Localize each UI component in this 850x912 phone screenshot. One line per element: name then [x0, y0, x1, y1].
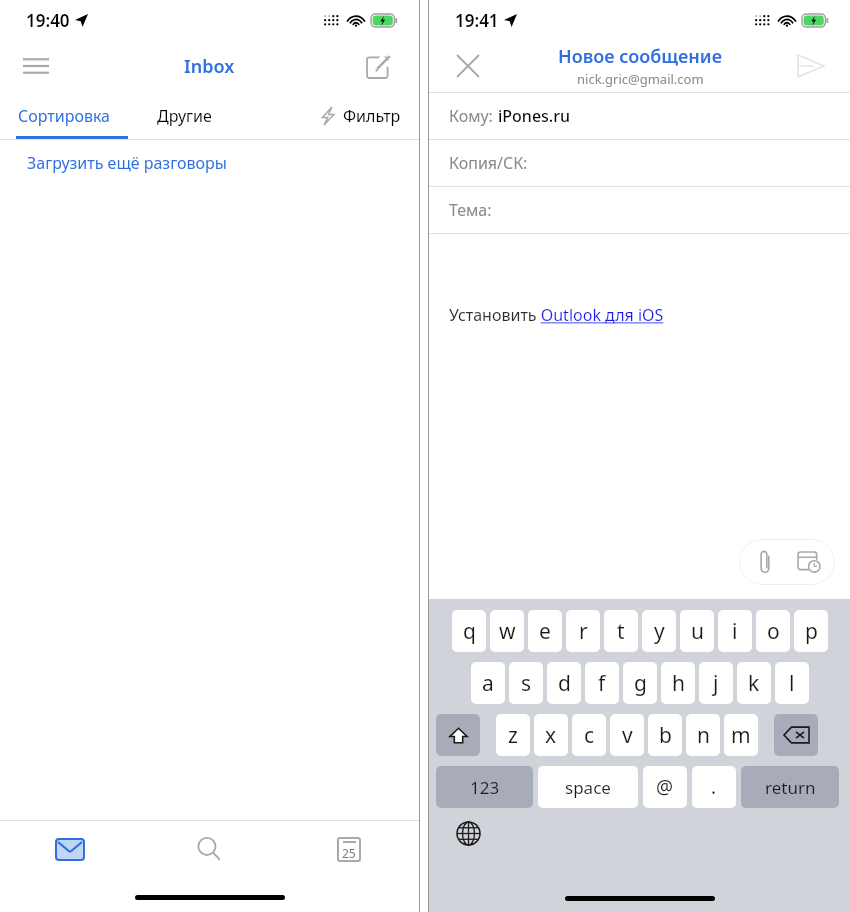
staticText: Фильтр	[343, 105, 401, 127]
staticText: z	[508, 721, 518, 750]
staticText: Сортировка	[18, 105, 111, 127]
button[interactable]: r	[566, 610, 600, 652]
staticText: i	[732, 617, 738, 646]
staticText: Загрузить ещё разговоры	[27, 152, 227, 174]
button[interactable]: m	[724, 714, 758, 756]
button[interactable]: Close	[447, 45, 489, 87]
staticText: Inbox	[184, 54, 235, 79]
staticText: @	[656, 774, 674, 800]
staticText: p	[805, 617, 818, 646]
staticText: j	[713, 669, 719, 698]
button[interactable]: Menu	[14, 44, 58, 88]
staticText: q	[463, 617, 476, 646]
staticText: u	[691, 617, 704, 646]
button[interactable]: c	[572, 714, 606, 756]
button[interactable]: l	[775, 662, 809, 704]
staticText: g	[634, 669, 647, 698]
button[interactable]: y	[642, 610, 676, 652]
button[interactable]: Другие	[128, 92, 240, 139]
staticText: y	[654, 617, 665, 646]
button[interactable]: Search	[139, 821, 279, 877]
button[interactable]: Change keyboard	[451, 816, 485, 850]
staticText: l	[789, 669, 795, 698]
button[interactable]: Mail	[0, 821, 139, 877]
button[interactable]: z	[496, 714, 530, 756]
staticText: Копия/СК:	[449, 152, 528, 174]
button[interactable]: Копия/СК:	[429, 140, 850, 186]
staticText: Установить Outlook для iOS	[449, 304, 664, 326]
button[interactable]: p	[794, 610, 828, 652]
staticText: n	[697, 721, 710, 750]
staticText: e	[539, 617, 551, 646]
button[interactable]: q	[452, 610, 486, 652]
button[interactable]: return	[741, 766, 839, 808]
staticText: o	[767, 617, 780, 646]
button[interactable]: v	[610, 714, 644, 756]
button[interactable]: Attach file	[747, 544, 783, 580]
button[interactable]: i	[718, 610, 752, 652]
staticText: Новое сообщение	[558, 44, 722, 69]
button[interactable]: b	[648, 714, 682, 756]
staticText: Тема:	[449, 199, 492, 221]
button[interactable]: .	[692, 766, 736, 808]
button[interactable]: Send	[790, 45, 832, 87]
staticText: .	[711, 774, 717, 800]
staticText: a	[482, 669, 494, 698]
button[interactable]: f	[585, 662, 619, 704]
button[interactable]: d	[547, 662, 581, 704]
button[interactable]: h	[661, 662, 695, 704]
button[interactable]: 123	[436, 766, 533, 808]
button[interactable]: g	[623, 662, 657, 704]
button[interactable]: w	[490, 610, 524, 652]
staticText: b	[659, 721, 672, 750]
staticText: x	[545, 721, 557, 750]
staticText: 19:41	[455, 9, 499, 32]
button[interactable]: Compose	[357, 44, 401, 88]
staticText: return	[765, 776, 816, 799]
button[interactable]: Shift	[436, 714, 480, 756]
button[interactable]: Inbox	[184, 54, 235, 79]
button[interactable]: j	[699, 662, 733, 704]
staticText: d	[558, 669, 571, 698]
staticText: Другие	[157, 105, 212, 127]
button[interactable]: Фильтр	[321, 92, 401, 139]
button[interactable]: Сортировка	[0, 92, 128, 139]
button[interactable]: n	[686, 714, 720, 756]
button[interactable]: u	[680, 610, 714, 652]
button[interactable]: Calendar	[279, 821, 419, 877]
staticText: 123	[470, 776, 500, 799]
button[interactable]: Calendar availability	[791, 544, 827, 580]
staticText: iPones.ru	[498, 105, 571, 127]
staticText: nick.gric@gmail.com	[577, 70, 704, 88]
staticText: c	[584, 721, 595, 750]
staticText: w	[499, 617, 516, 646]
staticText: m	[731, 721, 751, 750]
staticText: 19:40	[26, 9, 70, 32]
button[interactable]: Тема:	[429, 187, 850, 233]
button[interactable]: k	[737, 662, 771, 704]
staticText: f	[598, 669, 606, 698]
button[interactable]: o	[756, 610, 790, 652]
button[interactable]: Backspace	[774, 714, 818, 756]
button[interactable]: space	[538, 766, 638, 808]
staticText: space	[565, 776, 611, 799]
button[interactable]: @	[643, 766, 687, 808]
button[interactable]: Кому:	[429, 93, 850, 139]
staticText: s	[521, 669, 532, 698]
staticText: r	[579, 617, 588, 646]
button[interactable]: e	[528, 610, 562, 652]
staticText: Кому:	[449, 105, 498, 127]
staticText: t	[617, 617, 625, 646]
staticText: k	[748, 669, 760, 698]
staticText: 25	[342, 845, 356, 861]
staticText: v	[622, 721, 633, 750]
button[interactable]: t	[604, 610, 638, 652]
button[interactable]: a	[471, 662, 505, 704]
button[interactable]: s	[509, 662, 543, 704]
button[interactable]: x	[534, 714, 568, 756]
button[interactable]: Загрузить ещё разговоры	[0, 140, 419, 186]
staticText: h	[672, 669, 685, 698]
